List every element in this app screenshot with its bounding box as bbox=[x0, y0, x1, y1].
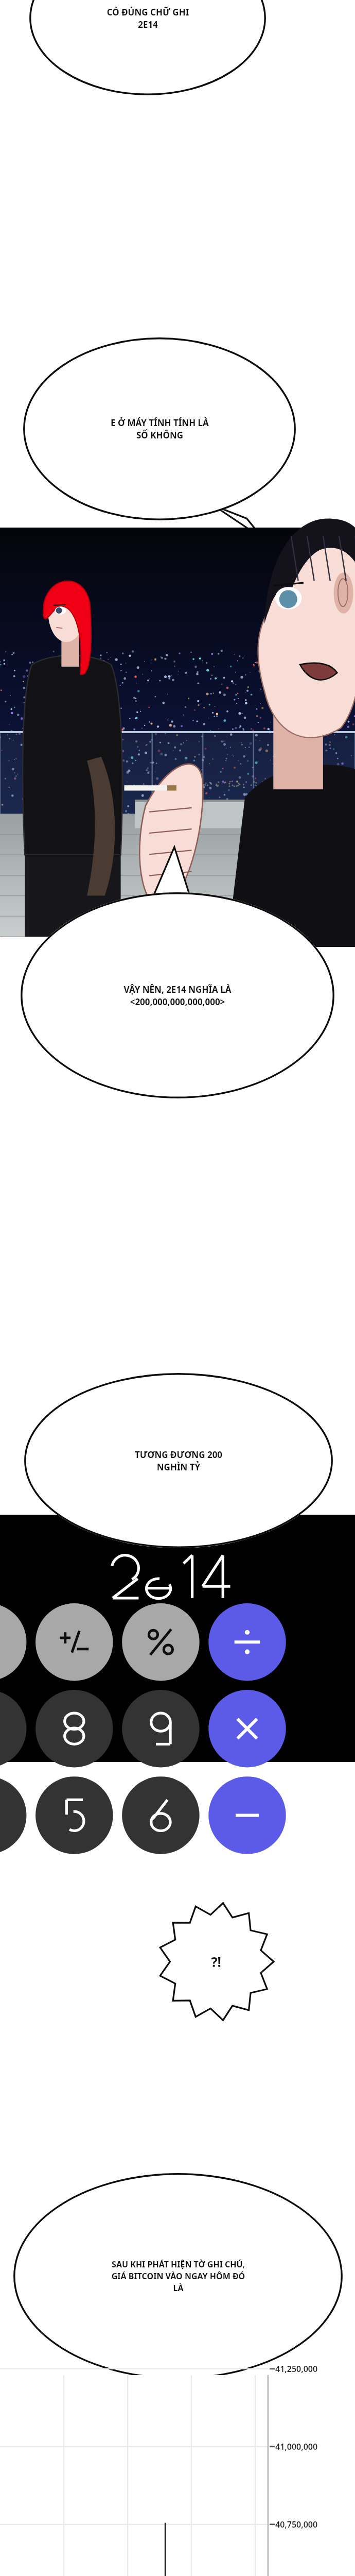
staticText: SAU KHI PHÁT HIỆN TỜ GHI CHÚ, GIÁ BITCOI… bbox=[43, 2259, 313, 2294]
button[interactable]: CÓ ĐÚNG CHỮ GHI 2E14 bbox=[29, 0, 266, 95]
button[interactable]: ?! bbox=[157, 1901, 275, 2022]
staticText: 41,250,000 bbox=[275, 2363, 318, 2375]
button[interactable]: TƯƠNG ĐƯƠNG 200 NGHÌN TỶ bbox=[24, 1373, 333, 1548]
staticText: 40,750,000 bbox=[275, 2519, 318, 2530]
staticText: 41,000,000 bbox=[275, 2441, 318, 2452]
staticText: TƯƠNG ĐƯƠNG 200 NGHÌN TỶ bbox=[52, 1449, 305, 1473]
staticText: E Ở MÁY TÍNH TÍNH LÀ SỐ KHÔNG bbox=[48, 417, 272, 441]
button[interactable]: SAU KHI PHÁT HIỆN TỜ GHI CHÚ, GIÁ BITCOI… bbox=[13, 2173, 343, 2379]
staticText: ?! bbox=[211, 1953, 221, 1971]
button[interactable]: E Ở MÁY TÍNH TÍNH LÀ SỐ KHÔNG bbox=[23, 337, 296, 520]
staticText: VẬY NÊN, 2E14 NGHĨA LÀ <200,000,000,000,… bbox=[49, 984, 306, 1008]
staticText: CÓ ĐÚNG CHỮ GHI 2E14 bbox=[51, 6, 245, 30]
button[interactable]: VẬY NÊN, 2E14 NGHĨA LÀ <200,000,000,000,… bbox=[21, 892, 334, 1098]
